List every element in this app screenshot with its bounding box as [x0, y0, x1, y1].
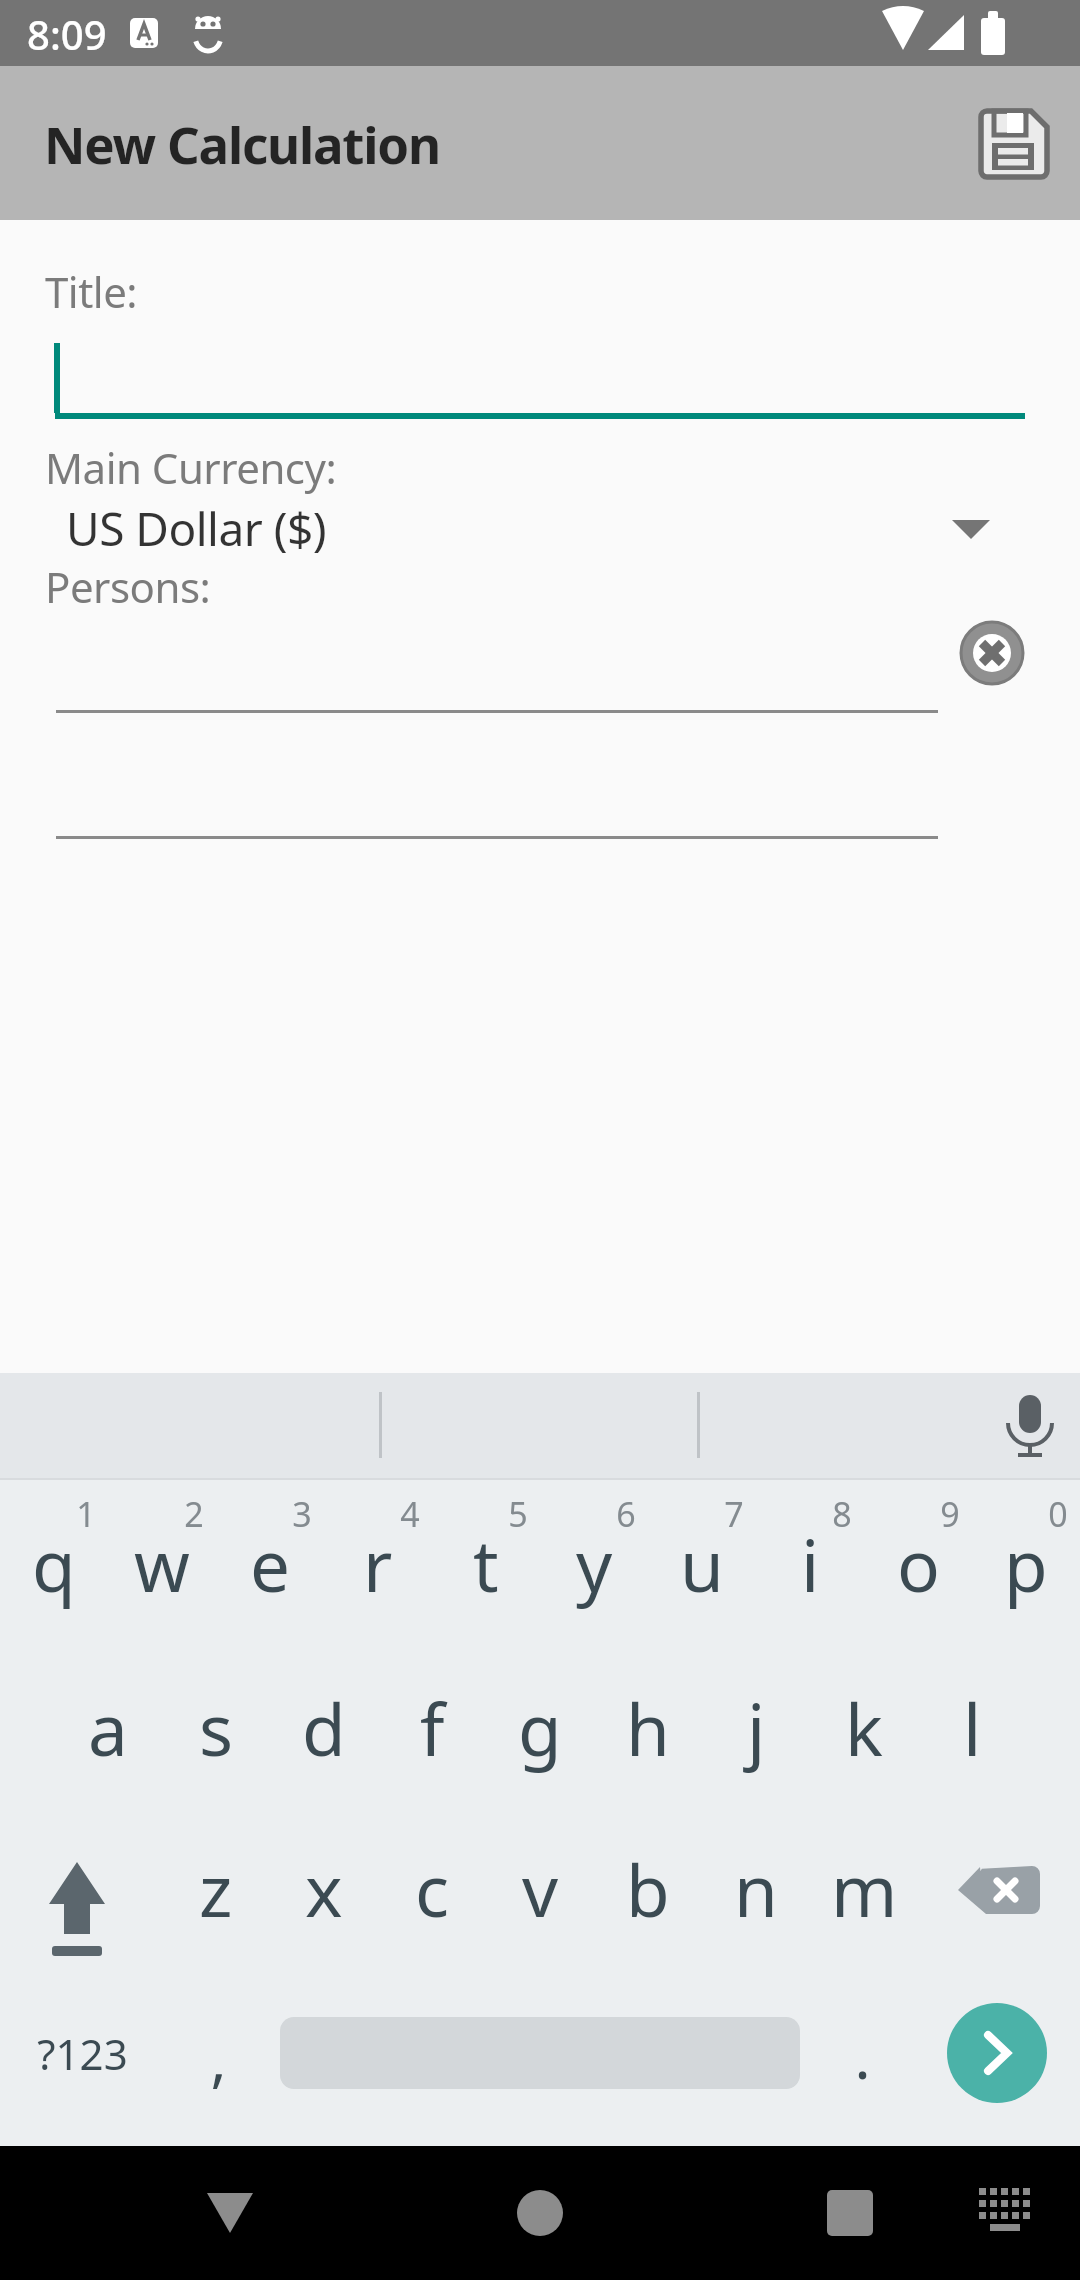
staticText: 2: [184, 1491, 204, 1537]
button[interactable]: [45, 493, 1030, 563]
staticText: f: [420, 1680, 445, 1777]
staticText: 8: [832, 1491, 852, 1537]
button[interactable]: t: [432, 1478, 540, 1645]
button[interactable]: b: [594, 1812, 702, 1979]
staticText: Persons:: [45, 558, 211, 615]
staticText: e: [250, 1516, 291, 1613]
button[interactable]: r: [324, 1478, 432, 1645]
button[interactable]: [490, 2163, 590, 2263]
button[interactable]: v: [486, 1812, 594, 1979]
staticText: r: [363, 1516, 393, 1613]
staticText: i: [801, 1516, 820, 1613]
button[interactable]: [180, 2162, 280, 2262]
button[interactable]: [965, 2174, 1045, 2254]
button[interactable]: [800, 2163, 900, 2263]
staticText: y: [576, 1516, 613, 1613]
staticText: s: [199, 1680, 234, 1777]
button[interactable]: [998, 1393, 1062, 1457]
button[interactable]: [918, 1812, 1080, 1979]
staticText: 9: [940, 1491, 960, 1537]
button[interactable]: u: [648, 1478, 756, 1645]
staticText: 1: [76, 1491, 96, 1537]
staticText: 4: [400, 1491, 420, 1537]
button[interactable]: z: [162, 1812, 270, 1979]
staticText: b: [626, 1841, 670, 1938]
button[interactable]: a: [54, 1645, 162, 1812]
button[interactable]: k: [810, 1645, 918, 1812]
button[interactable]: s: [162, 1645, 270, 1812]
staticText: 0: [1048, 1491, 1068, 1537]
staticText: l: [963, 1680, 982, 1777]
staticText: 5: [508, 1491, 528, 1537]
staticText: g: [518, 1680, 562, 1777]
button[interactable]: [0, 1812, 162, 1979]
staticText: q: [32, 1516, 76, 1613]
staticText: ?123: [37, 2025, 128, 2082]
button[interactable]: i: [756, 1478, 864, 1645]
button[interactable]: [960, 621, 1024, 685]
staticText: x: [305, 1841, 343, 1938]
staticText: Title:: [45, 263, 138, 320]
staticText: o: [897, 1516, 940, 1613]
button[interactable]: d: [270, 1645, 378, 1812]
button[interactable]: m: [810, 1812, 918, 1979]
button[interactable]: ,: [168, 1998, 268, 2118]
button[interactable]: h: [594, 1645, 702, 1812]
staticText: d: [302, 1680, 346, 1777]
button[interactable]: e: [216, 1478, 324, 1645]
staticText: 7: [724, 1491, 744, 1537]
staticText: US Dollar ($): [66, 497, 327, 560]
staticText: h: [626, 1680, 670, 1777]
button[interactable]: [947, 2003, 1047, 2103]
button[interactable]: f: [378, 1645, 486, 1812]
staticText: Main Currency:: [45, 439, 337, 496]
staticText: v: [522, 1841, 559, 1938]
staticText: 6: [616, 1491, 636, 1537]
button[interactable]: o: [864, 1478, 972, 1645]
button[interactable]: g: [486, 1645, 594, 1812]
button[interactable]: p: [972, 1478, 1080, 1645]
button[interactable]: l: [918, 1645, 1026, 1812]
staticText: 8:09: [27, 7, 107, 61]
staticText: New Calculation: [44, 109, 440, 178]
staticText: n: [734, 1841, 778, 1938]
button[interactable]: ?123: [2, 1993, 162, 2113]
button[interactable]: y: [540, 1478, 648, 1645]
staticText: t: [473, 1516, 499, 1613]
staticText: j: [747, 1680, 766, 1777]
staticText: z: [199, 1841, 233, 1938]
staticText: k: [845, 1680, 883, 1777]
button[interactable]: w: [108, 1478, 216, 1645]
staticText: p: [1004, 1516, 1048, 1613]
staticText: c: [415, 1841, 450, 1938]
staticText: u: [680, 1516, 724, 1613]
staticText: a: [88, 1680, 128, 1777]
staticText: w: [134, 1516, 190, 1613]
staticText: .: [854, 2015, 871, 2097]
button[interactable]: c: [378, 1812, 486, 1979]
button[interactable]: j: [702, 1645, 810, 1812]
button[interactable]: x: [270, 1812, 378, 1979]
staticText: 3: [292, 1491, 312, 1537]
button[interactable]: n: [702, 1812, 810, 1979]
button[interactable]: .: [812, 1996, 912, 2116]
button[interactable]: q: [0, 1478, 108, 1645]
staticText: m: [831, 1841, 898, 1938]
staticText: ,: [210, 2017, 227, 2099]
button[interactable]: [972, 101, 1056, 185]
